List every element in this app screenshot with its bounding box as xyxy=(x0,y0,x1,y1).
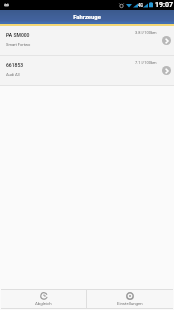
button[interactable]: PA SM000 xyxy=(0,26,174,55)
staticText: Audi A3 xyxy=(6,72,20,77)
button[interactable]: 661853 xyxy=(0,56,174,85)
staticText: Einstellungen xyxy=(117,301,143,306)
staticText: 7.1 l/100km xyxy=(135,60,157,65)
staticText: Abgleich xyxy=(35,301,52,306)
staticText: 3.8 l/100km xyxy=(135,30,157,35)
staticText: Fahrzeuge xyxy=(73,14,101,21)
button[interactable]: Einstellungen xyxy=(87,289,173,309)
staticText: 4G xyxy=(138,3,143,8)
button[interactable]: Details xyxy=(162,36,171,45)
staticText: PA SM000 xyxy=(6,32,30,38)
staticText: 661853 xyxy=(6,62,24,68)
staticText: 19:07 xyxy=(155,1,174,9)
button[interactable]: Details xyxy=(162,66,171,75)
staticText: Smart Fortwo xyxy=(6,42,31,47)
button[interactable]: Abgleich xyxy=(1,289,86,309)
